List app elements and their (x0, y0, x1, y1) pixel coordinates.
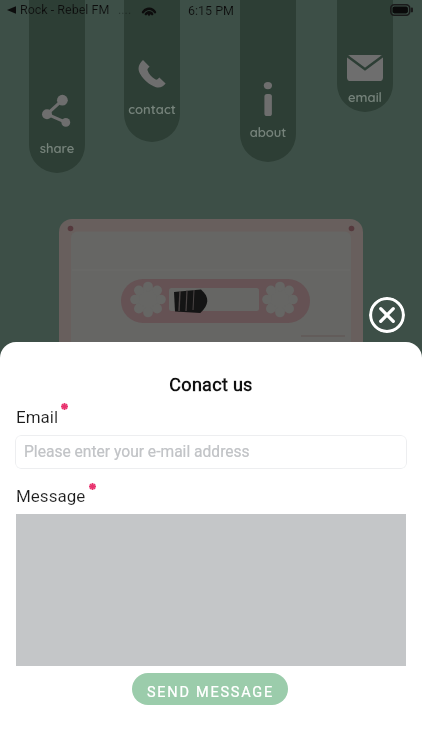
staticText: email (337, 89, 393, 105)
button[interactable]: email (337, 0, 393, 112)
button[interactable]: Close (369, 297, 405, 333)
button[interactable]: Please enter your e-mail address (15, 435, 407, 469)
staticText: Email (16, 407, 59, 427)
button[interactable]: share (29, 0, 85, 173)
button[interactable]: contact (124, 0, 180, 142)
staticText: share (29, 140, 85, 156)
staticText: Conact us (0, 374, 422, 395)
staticText: 6:15 PM (188, 3, 235, 18)
staticText: contact (124, 101, 180, 117)
button[interactable]: about (240, 0, 296, 162)
staticText: .... (118, 2, 132, 17)
staticText: Please enter your e-mail address (24, 443, 250, 461)
staticText: about (240, 124, 296, 140)
button[interactable]: SEND MESSAGE (132, 673, 288, 705)
staticText: SEND MESSAGE (147, 684, 274, 701)
staticText: Rock - Rebel FM (20, 2, 110, 17)
staticText: Message (16, 486, 86, 506)
